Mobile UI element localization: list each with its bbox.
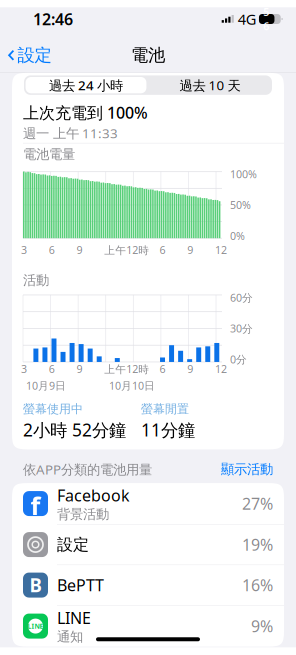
staticText: BePTT [57,574,104,596]
staticText: 27% [242,493,273,514]
button[interactable]: 過去 24 小時 [24,75,148,95]
staticText: 56 [263,5,269,33]
staticText: 12 [215,243,227,257]
staticText: 10月10日 [109,378,155,393]
staticText: 9 [187,243,193,257]
staticText: 9 [187,362,193,376]
staticText: 2小時 52分鐘 [23,418,126,441]
button[interactable]: 過去 10 天 [148,75,272,95]
staticText: 週一 上午 11:33 [23,124,118,142]
staticText: 60分 [230,290,253,305]
staticText: 上午12時 [104,362,149,376]
staticText: 電池 [131,45,165,66]
staticText: 16% [242,574,273,596]
staticText: 過去 24 小時 [49,76,123,94]
staticText: 上午12時 [104,243,149,257]
staticText: 電池電量 [23,146,75,162]
staticText: 6 [49,243,55,257]
staticText: LINE [27,622,43,631]
staticText: 19% [242,534,273,555]
staticText: 12 [215,362,227,376]
staticText: 6 [160,362,166,376]
staticText: 6 [160,243,166,257]
staticText: 顯示活動 [221,461,273,477]
staticText: 4G [238,9,257,29]
staticText: 0% [230,229,245,243]
staticText: 活動 [23,272,49,288]
staticText: LINE [57,607,91,628]
staticText: 螢幕使用中 [23,402,83,416]
staticText: 30分 [230,321,253,336]
staticText: f [30,489,40,522]
staticText: Facebook [57,485,130,506]
staticText: 6 [49,362,55,376]
staticText: 10月9日 [26,378,66,393]
staticText: 0分 [230,352,247,366]
staticText: 螢幕閒置 [141,402,189,416]
staticText: 50% [230,198,251,212]
staticText: 100% [230,167,257,181]
button[interactable]: 設定 [12,525,284,565]
staticText: 9 [76,362,82,376]
staticText: 過去 10 天 [179,76,240,94]
staticText: 3 [21,243,27,257]
button[interactable]: 顯示活動 [221,461,273,477]
staticText: 依APP分類的電池用量 [23,460,152,478]
button[interactable]: f [12,483,284,524]
staticText: 12:46 [33,8,73,30]
button[interactable]: 設定 [0,41,59,70]
staticText: 設定 [17,45,51,66]
staticText: 9 [76,243,82,257]
button[interactable]: B [12,565,284,605]
staticText: 通知 [57,628,83,645]
button[interactable]: LINE [12,606,284,647]
staticText: 背景活動 [57,506,109,522]
staticText: B [29,573,41,597]
staticText: 3 [21,362,27,376]
staticText: 設定 [57,535,89,554]
staticText: 11分鐘 [141,418,195,441]
staticText: 上次充電到 100% [23,102,148,123]
staticText: 9% [251,615,273,637]
